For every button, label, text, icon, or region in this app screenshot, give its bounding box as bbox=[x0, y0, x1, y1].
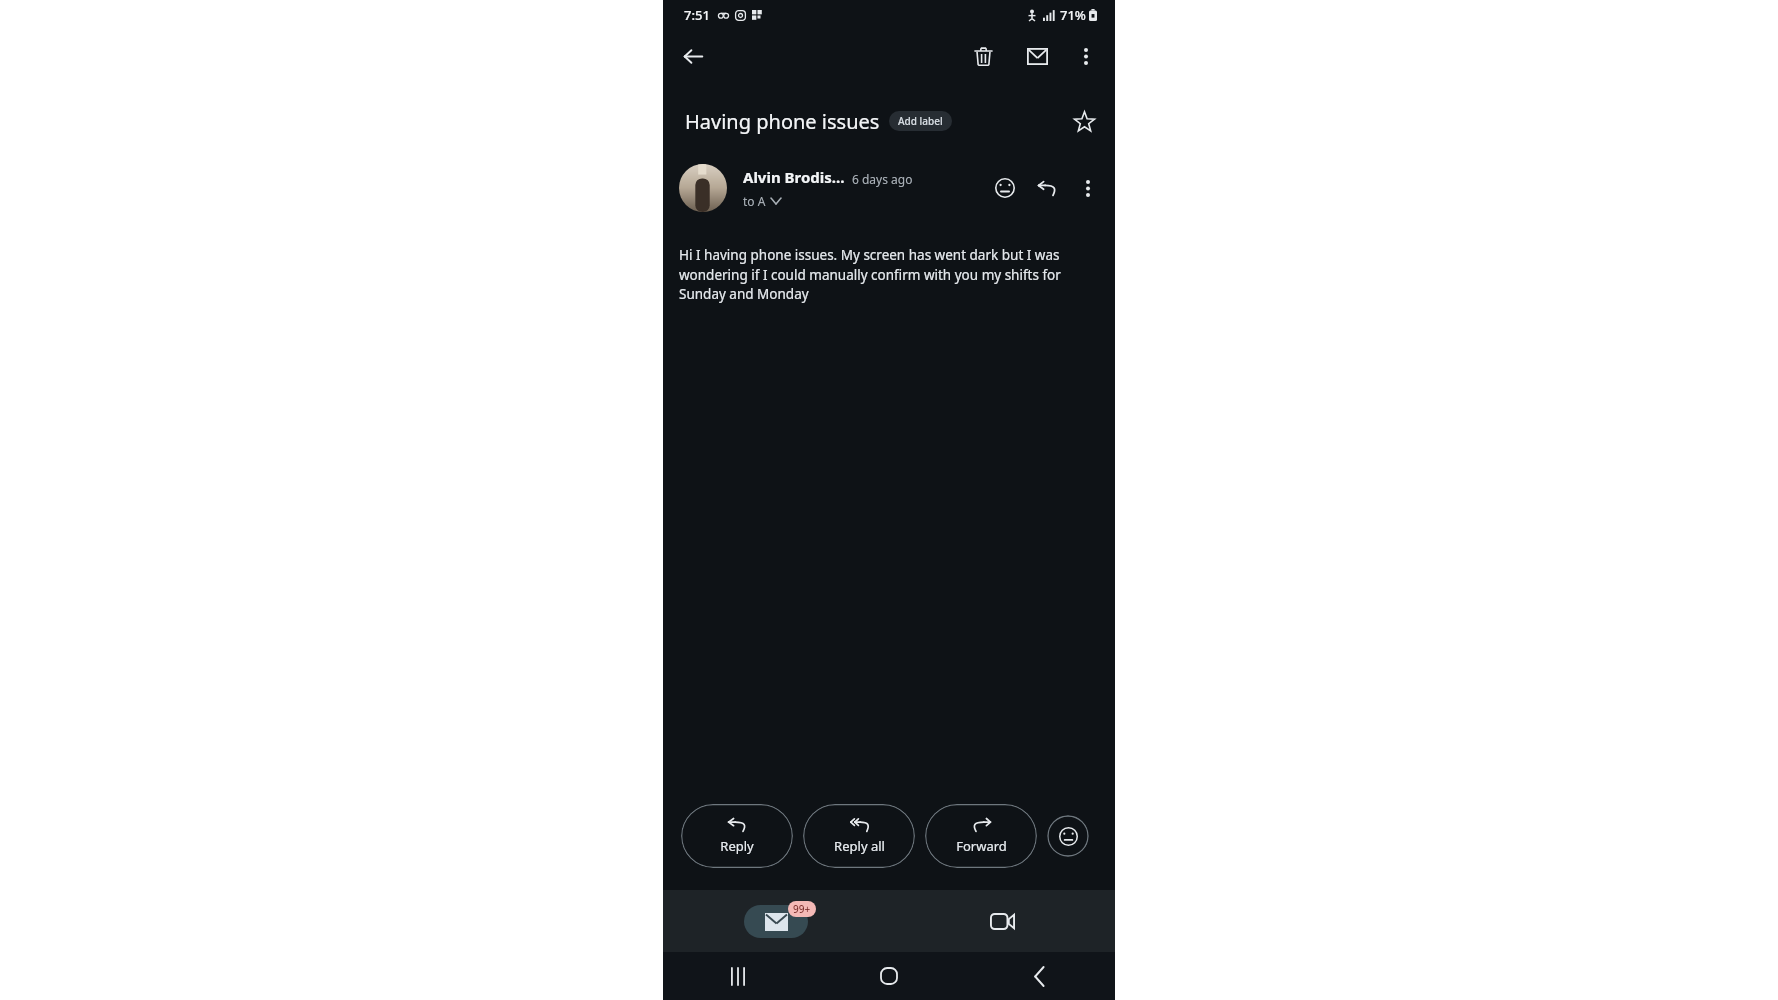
button[interactable]: Delete bbox=[961, 34, 1005, 78]
staticText: 7:51 bbox=[684, 6, 710, 24]
staticText: Alvin Brodis… bbox=[743, 167, 845, 187]
button[interactable]: Recents bbox=[663, 952, 813, 1000]
button[interactable]: Back bbox=[964, 952, 1115, 1000]
button[interactable]: Add reaction bbox=[985, 168, 1025, 208]
button[interactable]: More options bbox=[1065, 35, 1107, 77]
button[interactable]: Reply bbox=[681, 804, 793, 868]
staticText: Add label bbox=[898, 114, 943, 128]
button[interactable]: Meet bbox=[889, 890, 1115, 952]
button[interactable]: More options for this message bbox=[1069, 169, 1107, 207]
staticText: 6 days ago bbox=[852, 171, 913, 187]
button[interactable]: to A bbox=[743, 193, 781, 209]
button[interactable]: Add label bbox=[889, 111, 952, 131]
button[interactable]: Back bbox=[671, 34, 715, 78]
button[interactable]: 99+ bbox=[663, 890, 889, 952]
button[interactable]: Forward bbox=[925, 804, 1037, 868]
staticText: Hi I having phone issues. My screen has … bbox=[679, 246, 1089, 303]
staticText: 99+ bbox=[793, 902, 811, 916]
staticText: Reply all bbox=[834, 837, 885, 855]
staticText: Forward bbox=[956, 837, 1007, 855]
staticText: Having phone issues bbox=[685, 108, 880, 135]
staticText: 71% bbox=[1060, 6, 1086, 24]
button[interactable]: Mark as unread bbox=[1015, 34, 1059, 78]
button[interactable]: Reply all bbox=[803, 804, 915, 868]
staticText: Reply bbox=[720, 837, 754, 855]
button[interactable]: Add reaction bbox=[1047, 815, 1089, 857]
button[interactable]: Reply bbox=[1027, 168, 1067, 208]
button[interactable]: Sender photo bbox=[679, 164, 727, 212]
staticText: to A bbox=[743, 193, 766, 209]
button[interactable]: Home bbox=[813, 952, 964, 1000]
button[interactable]: Star bbox=[1063, 100, 1105, 142]
